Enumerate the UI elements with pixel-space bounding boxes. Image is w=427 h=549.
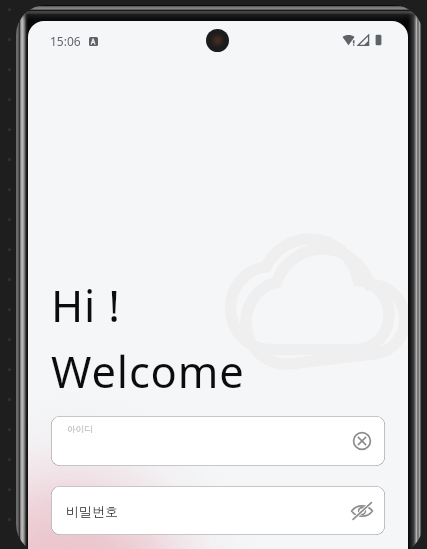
staticText: 비밀번호 bbox=[66, 503, 118, 519]
staticText: Welcome bbox=[51, 341, 245, 400]
staticText: 15:06 bbox=[50, 33, 81, 49]
staticText: 아이디 bbox=[67, 424, 93, 435]
staticText: Hi ! bbox=[51, 275, 121, 334]
button[interactable]: Show password bbox=[350, 499, 374, 523]
button[interactable]: 비밀번호 bbox=[51, 486, 385, 535]
button[interactable]: Clear text bbox=[351, 430, 373, 452]
button[interactable]: 아이디 bbox=[51, 416, 385, 466]
staticText: A bbox=[91, 37, 96, 46]
